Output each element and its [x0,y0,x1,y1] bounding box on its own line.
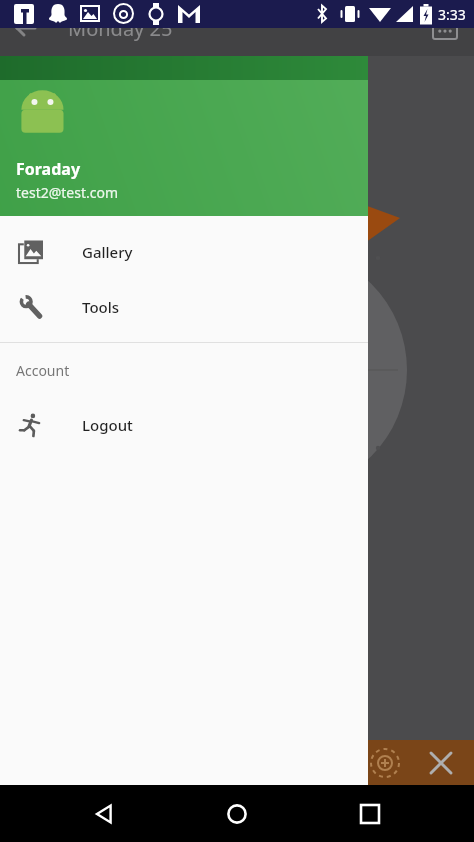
staticText: Gallery [82,242,133,262]
button[interactable]: Tools [0,279,368,334]
staticText: test2@test.com [16,183,119,202]
staticText: Monday 25 [68,15,173,42]
button[interactable]: Gallery [0,224,368,279]
staticText: 3:33 [438,5,466,24]
staticText: Logout [82,415,133,435]
staticText: 3:33 [438,5,466,24]
button[interactable]: Recent apps [342,786,398,842]
button[interactable]: Back [77,786,133,842]
button[interactable]: Home [209,786,265,842]
button[interactable]: Logout [0,397,368,452]
staticText: Tools [82,297,120,317]
staticText: Account [16,361,70,380]
staticText: Foraday [16,158,81,180]
